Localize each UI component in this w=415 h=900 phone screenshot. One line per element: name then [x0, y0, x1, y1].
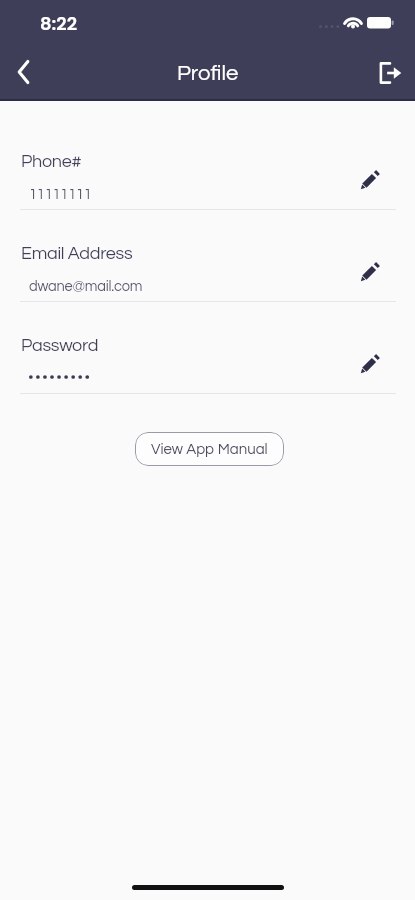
button[interactable]: Edit Email Address — [350, 252, 390, 292]
button[interactable]: View App Manual — [135, 432, 284, 466]
staticText: Email Address — [21, 244, 133, 263]
button[interactable]: Edit Password — [350, 344, 390, 384]
staticText: 8:22 — [40, 11, 77, 36]
button[interactable]: Edit Phone# — [350, 160, 390, 200]
staticText: 11111111 — [29, 187, 92, 202]
button[interactable]: Back — [1, 49, 47, 95]
staticText: Password — [21, 336, 99, 355]
staticText: View App Manual — [151, 442, 268, 457]
staticText: Profile — [177, 62, 239, 85]
button[interactable]: Log out — [367, 50, 413, 96]
staticText: dwane@mail.com — [29, 279, 143, 294]
staticText: Phone# — [21, 152, 82, 171]
